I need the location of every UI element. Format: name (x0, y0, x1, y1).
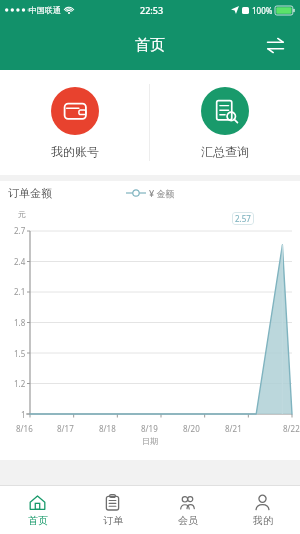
button[interactable]: 我的账号 (0, 70, 149, 175)
staticText: 1.2 (14, 378, 26, 389)
staticText: 订单金额 (8, 186, 52, 200)
staticText: 22:53 (140, 4, 164, 16)
staticText: 2.4 (14, 256, 26, 267)
staticText: 1.5 (14, 348, 26, 359)
staticText: 汇总查询 (201, 144, 249, 159)
staticText: 8/22 (283, 423, 300, 434)
staticText: 元 (18, 209, 26, 219)
staticText: 会员 (178, 514, 198, 527)
staticText: 8/18 (99, 423, 116, 434)
button[interactable]: 订单 (75, 486, 150, 534)
staticText: 8/21 (225, 423, 242, 434)
staticText: 首页 (135, 36, 165, 55)
staticText: 8/16 (16, 423, 33, 434)
staticText: 100% (252, 5, 273, 16)
staticText: 1 (21, 409, 26, 420)
button[interactable]: 首页 (0, 486, 75, 534)
staticText: 我的账号 (51, 144, 99, 159)
staticText: 8/19 (141, 423, 158, 434)
staticText: 中国联通 (29, 5, 61, 15)
staticText: 2.7 (14, 225, 26, 236)
staticText: 我的 (253, 514, 273, 527)
staticText: 2.57 (235, 213, 251, 224)
staticText: ¥ 金额 (149, 187, 175, 199)
staticText: 8/17 (57, 423, 74, 434)
button[interactable]: 汇总查询 (150, 70, 300, 175)
staticText: 8/20 (183, 423, 200, 434)
staticText: 订单 (103, 514, 123, 527)
button[interactable]: 会员 (150, 486, 225, 534)
staticText: 日期 (142, 436, 158, 446)
staticText: 首页 (28, 514, 48, 527)
staticText: 2.1 (14, 286, 26, 297)
staticText: 1.8 (14, 317, 26, 328)
button[interactable]: 我的 (225, 486, 300, 534)
button[interactable]: Switch (256, 26, 294, 64)
